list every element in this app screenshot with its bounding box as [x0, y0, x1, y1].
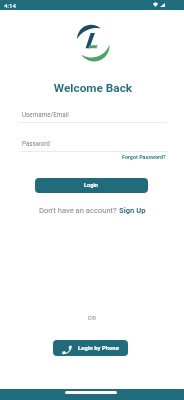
staticText: 4:14 [4, 2, 16, 9]
button[interactable]: Phone [53, 340, 128, 356]
staticText: Username/Email [22, 111, 69, 118]
button[interactable]: Login [35, 178, 148, 193]
button[interactable]: Sign Up [119, 206, 146, 215]
button[interactable]: Forgot Password? [122, 154, 166, 160]
other: Phone [61, 344, 73, 356]
staticText: Login [84, 182, 99, 189]
staticText: Password [22, 140, 50, 147]
staticText: Login by Phone [78, 345, 119, 352]
staticText: Don't have an account? [39, 206, 119, 215]
staticText: OR [0, 314, 184, 321]
staticText: Welcome Back [1, 81, 184, 95]
